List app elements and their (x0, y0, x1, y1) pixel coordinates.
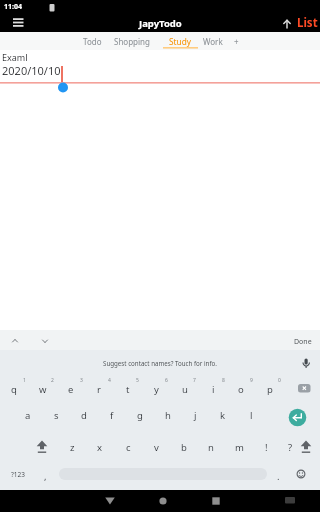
staticText: p (267, 383, 273, 396)
button[interactable]: e (58, 380, 84, 398)
staticText: a (25, 409, 31, 422)
staticText: , (44, 470, 47, 483)
staticText: 2020/10/10 (2, 63, 61, 78)
staticText: 3 (80, 377, 83, 384)
button[interactable]: y (143, 380, 169, 398)
button[interactable]: n (198, 438, 224, 456)
staticText: Work (203, 36, 223, 47)
button[interactable]: . (265, 467, 291, 485)
button[interactable]: b (171, 438, 197, 456)
button[interactable]: m (226, 438, 252, 456)
staticText: + (234, 36, 239, 47)
button[interactable]: Work (195, 32, 231, 50)
button[interactable]: k (210, 406, 236, 424)
staticText: o (238, 383, 244, 396)
staticText: 5 (136, 377, 139, 384)
button[interactable]: o (228, 380, 254, 398)
button[interactable]: i (200, 380, 226, 398)
staticText: Done (294, 337, 312, 347)
staticText: r (97, 383, 101, 396)
button[interactable] (8, 14, 28, 32)
staticText: Examl (2, 51, 28, 63)
button[interactable] (205, 490, 227, 512)
button[interactable]: w (30, 380, 56, 398)
staticText: i (212, 383, 215, 396)
button[interactable]: a (15, 406, 41, 424)
staticText: Todo (83, 36, 102, 47)
button[interactable]: s (43, 406, 69, 424)
button[interactable] (99, 490, 121, 512)
button[interactable]: v (143, 438, 169, 456)
button[interactable]: Done (286, 333, 320, 351)
button[interactable]: c (115, 438, 141, 456)
staticText: . (277, 470, 280, 483)
staticText: b (181, 441, 187, 454)
staticText: t (126, 383, 130, 396)
staticText: d (81, 409, 87, 422)
staticText: Study (169, 36, 192, 47)
button[interactable]: f (99, 406, 125, 424)
staticText: 11:04 (4, 2, 22, 12)
staticText: 6 (165, 377, 168, 384)
button[interactable] (287, 407, 308, 428)
staticText: w (39, 383, 47, 396)
staticText: x (97, 441, 103, 454)
staticText: f (110, 409, 114, 422)
button[interactable] (296, 438, 316, 456)
staticText: 1 (23, 377, 26, 384)
staticText: l (250, 409, 253, 422)
button[interactable]: Todo (72, 32, 112, 50)
staticText: Suggest contact names? Touch for info. (103, 359, 217, 367)
button[interactable] (292, 465, 310, 483)
staticText: 9 (250, 377, 253, 384)
staticText: 0 (278, 377, 281, 384)
button[interactable]: g (127, 406, 153, 424)
button[interactable]: d (71, 406, 97, 424)
staticText: m (235, 441, 244, 454)
button[interactable]: ? (277, 438, 303, 456)
button[interactable]: q (1, 380, 27, 398)
staticText: k (220, 409, 226, 422)
staticText: q (11, 383, 17, 396)
staticText: c (126, 441, 131, 454)
staticText: e (68, 383, 74, 396)
staticText: 7 (193, 377, 196, 384)
button[interactable]: j (182, 406, 208, 424)
staticText: s (54, 409, 59, 422)
button[interactable]: u (172, 380, 198, 398)
button[interactable]: + (229, 32, 243, 50)
button[interactable] (279, 14, 295, 32)
staticText: n (208, 441, 214, 454)
staticText: z (70, 441, 75, 454)
staticText: h (165, 409, 171, 422)
button[interactable]: z (59, 438, 85, 456)
button[interactable]: , (32, 467, 58, 485)
button[interactable]: List (294, 14, 320, 32)
staticText: ? (288, 441, 293, 454)
staticText: v (154, 441, 159, 454)
staticText: List (297, 15, 318, 31)
staticText: JapyTodo (139, 17, 182, 30)
staticText: y (154, 383, 159, 396)
button[interactable]: x (87, 438, 113, 456)
staticText: 8 (222, 377, 225, 384)
staticText: Shopping (114, 36, 150, 47)
staticText: j (194, 409, 197, 422)
button[interactable]: p (257, 380, 283, 398)
button[interactable] (152, 490, 174, 512)
button[interactable]: l (238, 406, 264, 424)
button[interactable] (294, 379, 318, 397)
staticText: ! (265, 441, 268, 454)
button[interactable]: Study (160, 32, 200, 50)
staticText: u (182, 383, 188, 396)
button[interactable]: Shopping (107, 32, 157, 50)
button[interactable] (32, 438, 52, 456)
button[interactable]: ?123 (3, 465, 33, 483)
button[interactable]: t (115, 380, 141, 398)
button[interactable]: r (86, 380, 112, 398)
button[interactable]: ! (253, 438, 279, 456)
button[interactable]: h (155, 406, 181, 424)
staticText: 2 (51, 377, 54, 384)
button[interactable]: Suggest contact names? Touch for info. (50, 356, 270, 370)
